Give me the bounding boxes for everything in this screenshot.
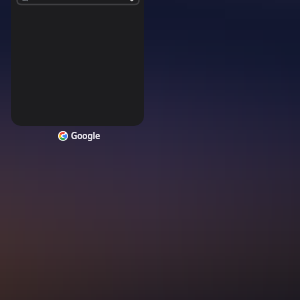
button[interactable] [11, 0, 144, 126]
button[interactable]: Search [17, 0, 139, 5]
staticText: Google [71, 130, 101, 142]
button[interactable]: Google [58, 130, 101, 142]
